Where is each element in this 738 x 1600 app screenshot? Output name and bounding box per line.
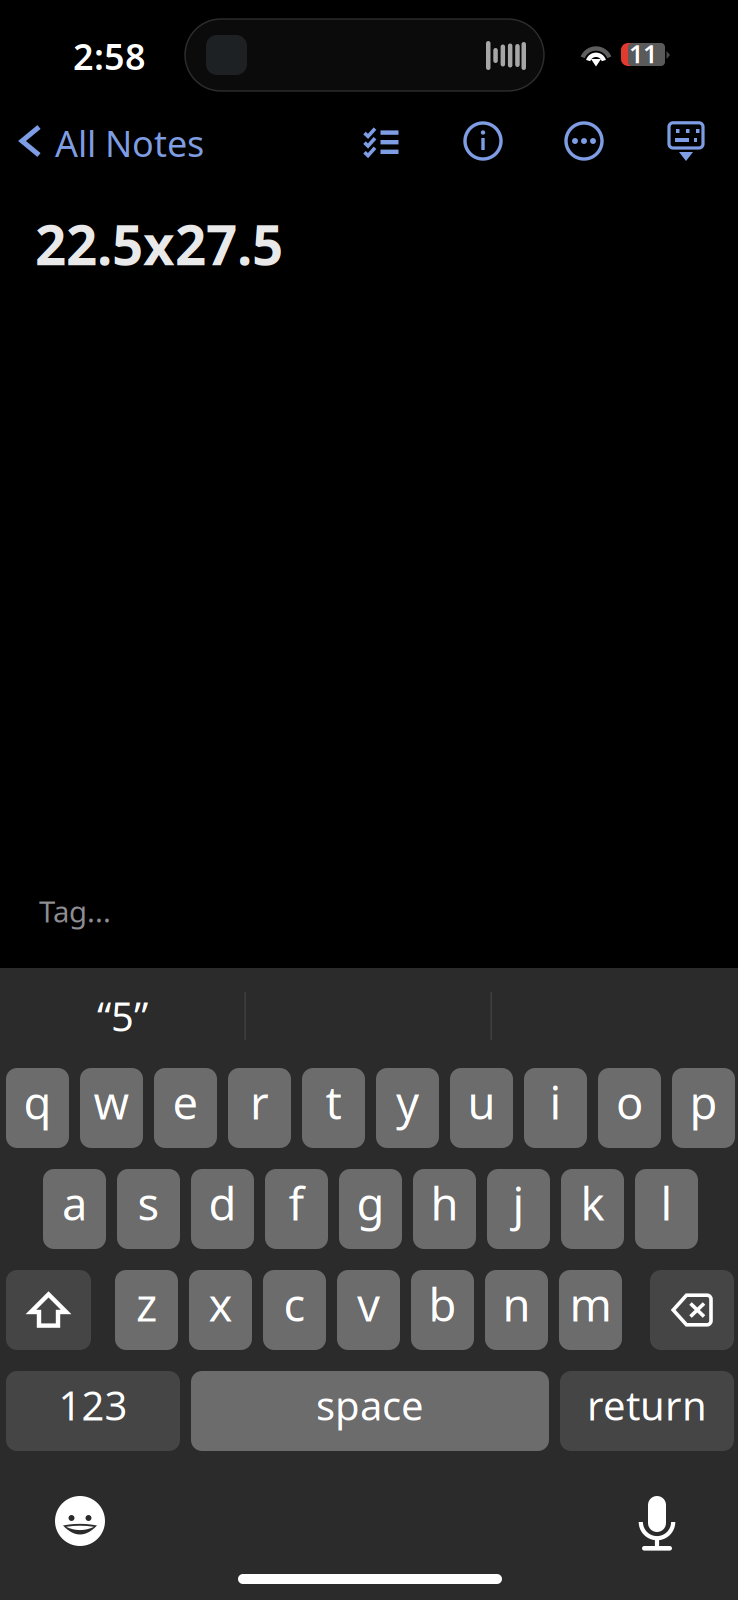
button[interactable]: m [559,1270,622,1350]
staticText: v [357,1274,380,1334]
button[interactable]: b [411,1270,474,1350]
staticText: x [208,1274,232,1334]
staticText: a [62,1173,87,1233]
staticText: return [587,1378,707,1431]
staticText: m [569,1274,611,1334]
button[interactable]: All Notes [14,120,274,166]
button[interactable]: Hide Keyboard [666,120,706,164]
button[interactable]: r [228,1068,291,1148]
staticText: n [502,1274,530,1334]
staticText: r [250,1072,269,1132]
staticText: 123 [58,1378,127,1431]
button[interactable]: Dictation [639,1496,675,1552]
staticText: 11 [629,37,657,70]
button[interactable]: c [263,1270,326,1350]
button[interactable]: o [598,1068,661,1148]
button[interactable]: f [265,1169,328,1249]
button[interactable]: w [80,1068,143,1148]
button[interactable]: x [189,1270,252,1350]
staticText: space [316,1378,424,1431]
staticText: 2:58 [73,32,146,80]
staticText: f [288,1173,304,1233]
staticText: t [325,1072,341,1132]
staticText: s [137,1173,159,1233]
button[interactable]: q [6,1068,69,1148]
staticText: l [660,1173,672,1233]
button[interactable]: d [191,1169,254,1249]
button[interactable]: Tag... [39,893,339,929]
button[interactable]: t [302,1068,365,1148]
button[interactable]: l [635,1169,698,1249]
staticText: 22.5x27.5 [35,208,283,280]
button[interactable]: y [376,1068,439,1148]
button[interactable]: p [672,1068,735,1148]
staticText: e [172,1072,198,1132]
staticText: u [467,1072,495,1132]
button[interactable]: s [117,1169,180,1249]
staticText: c [283,1274,305,1334]
staticText: k [580,1173,604,1233]
button[interactable]: More [566,123,602,159]
button[interactable]: u [450,1068,513,1148]
staticText: “5” [97,989,148,1042]
staticText: All Notes [55,119,204,167]
button[interactable]: Checklist [364,126,399,156]
staticText: y [396,1072,419,1132]
button[interactable]: k [561,1169,624,1249]
staticText: w [93,1072,129,1132]
staticText: b [428,1274,456,1334]
button[interactable]: h [413,1169,476,1249]
button[interactable]: n [485,1270,548,1350]
button[interactable]: 123 [6,1371,180,1451]
staticText: j [512,1173,524,1233]
button[interactable]: g [339,1169,402,1249]
button[interactable]: a [43,1169,106,1249]
button[interactable]: Emoji [55,1496,105,1546]
button[interactable]: “5” [0,992,245,1040]
staticText: d [208,1173,236,1233]
button[interactable]: space [191,1371,549,1451]
staticText: z [136,1274,157,1334]
staticText: p [689,1072,717,1132]
staticText: g [356,1173,384,1233]
button[interactable]: z [115,1270,178,1350]
staticText: q [23,1072,51,1132]
button[interactable]: v [337,1270,400,1350]
button[interactable]: e [154,1068,217,1148]
button[interactable]: Delete [650,1270,734,1350]
button[interactable]: Info [465,123,501,159]
button[interactable]: Shift [6,1270,91,1350]
staticText: Tag... [39,891,111,930]
button[interactable]: i [524,1068,587,1148]
button[interactable]: return [560,1371,734,1451]
button[interactable]: j [487,1169,550,1249]
staticText: i [549,1072,561,1132]
staticText: o [616,1072,643,1132]
staticText: h [430,1173,458,1233]
